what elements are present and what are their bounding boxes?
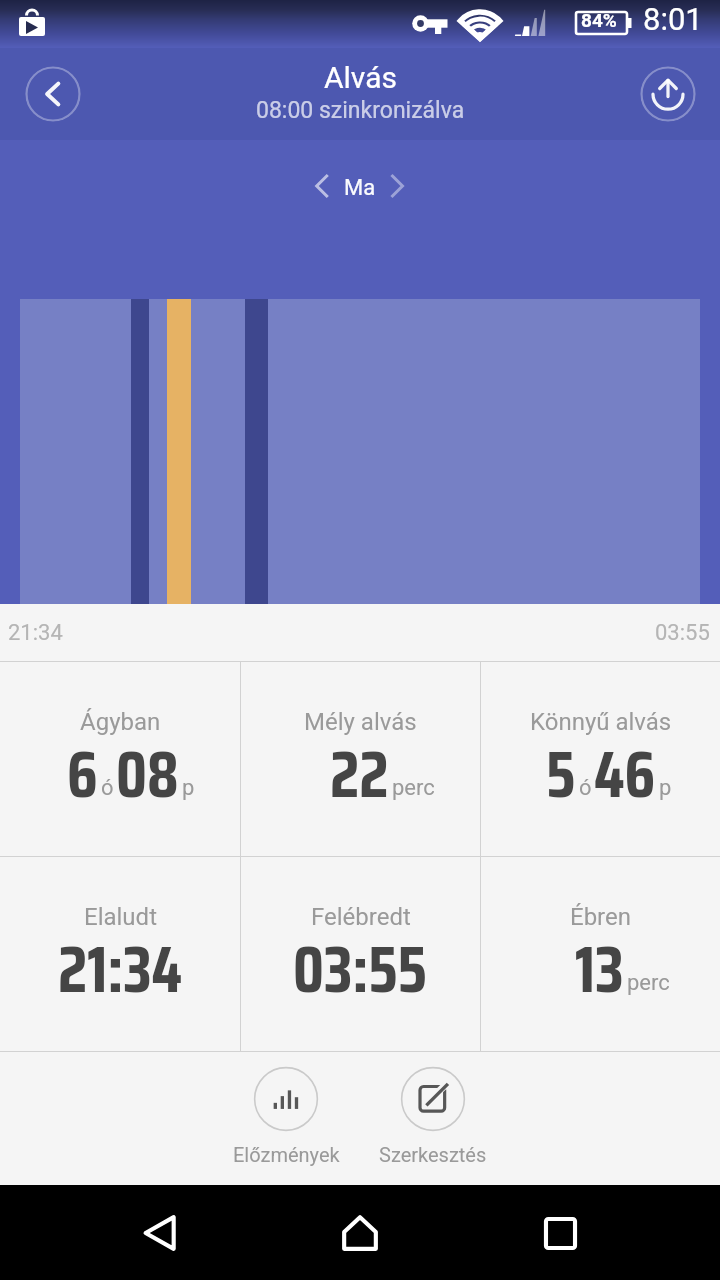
staticText: 08 <box>116 723 179 825</box>
staticText: 8:01 <box>643 1 703 37</box>
button[interactable]: Ébren <box>481 857 720 1051</box>
staticText: p <box>659 775 672 801</box>
button[interactable]: Back <box>133 1206 187 1260</box>
staticText: 84% <box>581 9 617 31</box>
button[interactable]: Elaludt <box>0 857 240 1051</box>
staticText: 03:55 <box>293 918 428 1020</box>
staticText: Előzmények <box>233 1143 340 1166</box>
staticText: perc <box>627 970 670 996</box>
staticText: Ébren <box>570 903 632 931</box>
staticText: Ágyban <box>80 708 161 736</box>
staticText: 08:00 szinkronizálva <box>256 97 465 124</box>
staticText: perc <box>392 775 435 801</box>
staticText: Ma <box>344 175 376 201</box>
staticText: 21:34 <box>8 620 63 646</box>
staticText: Elaludt <box>84 903 157 931</box>
button[interactable]: Felébredt <box>241 857 480 1051</box>
staticText: 03:55 <box>655 620 710 646</box>
button[interactable]: Sync <box>640 66 696 122</box>
button[interactable]: Előzmények <box>211 1063 361 1170</box>
button[interactable]: Previous day <box>300 168 342 210</box>
staticText: Alvás <box>324 60 397 95</box>
staticText: p <box>182 775 195 801</box>
button[interactable]: Next day <box>378 168 420 210</box>
staticText: Felébredt <box>311 903 411 931</box>
staticText: ó <box>101 775 114 801</box>
staticText: 21:34 <box>58 918 183 1020</box>
staticText: 22 <box>330 723 389 825</box>
staticText: Szerkesztés <box>379 1143 487 1166</box>
button[interactable]: Recents <box>533 1206 587 1260</box>
staticText: 5 <box>546 723 576 825</box>
button[interactable]: Szerkesztés <box>358 1063 508 1170</box>
staticText: Mély alvás <box>304 708 417 736</box>
staticText: 13 <box>575 918 624 1020</box>
staticText: 6 <box>67 723 98 825</box>
button[interactable]: Ágyban <box>0 662 240 856</box>
staticText: 46 <box>594 723 656 825</box>
button[interactable]: Mély alvás <box>241 662 480 856</box>
button[interactable]: Home <box>333 1206 387 1260</box>
button[interactable]: Könnyű alvás <box>481 662 720 856</box>
staticText: Könnyű alvás <box>530 708 672 736</box>
button[interactable]: Back <box>25 66 81 122</box>
staticText: ó <box>579 775 592 801</box>
